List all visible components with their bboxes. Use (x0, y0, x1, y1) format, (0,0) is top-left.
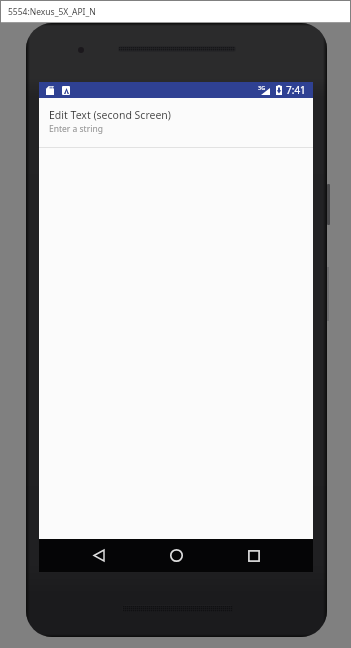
staticText: 3G (258, 84, 266, 91)
button[interactable]: Back (39, 539, 131, 572)
button[interactable]: Edit Text (second Screen) (39, 98, 313, 147)
staticText: Edit Text (second Screen) (49, 108, 171, 122)
staticText: Enter a string (49, 123, 103, 135)
button[interactable]: Home (131, 539, 222, 572)
staticText: 7:41 (286, 83, 306, 97)
button[interactable]: Recents (222, 539, 313, 572)
staticText: 5554:Nexus_5X_API_N (8, 6, 96, 18)
